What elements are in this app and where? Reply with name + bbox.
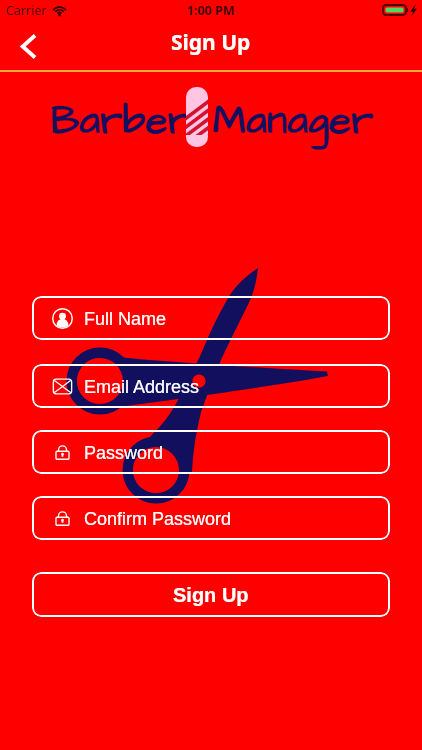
button[interactable]: Confirm Password (32, 496, 390, 540)
button[interactable]: Password (32, 430, 390, 474)
staticText: Carrier (6, 2, 47, 19)
staticText: Sign Up (173, 584, 249, 606)
staticText: Confirm Password (84, 509, 232, 529)
staticText: Email Address (84, 377, 200, 397)
staticText: Password (84, 443, 164, 463)
staticText: Sign Up (171, 28, 251, 57)
staticText: 1:00 PM (187, 2, 235, 19)
button[interactable]: Back (6, 22, 50, 66)
staticText: Manager (213, 94, 374, 150)
staticText: Barber (51, 94, 191, 150)
button[interactable]: Email Address (32, 364, 390, 408)
staticText: Full Name (84, 309, 167, 329)
button[interactable]: Full Name (32, 296, 390, 340)
button[interactable]: Sign Up (32, 572, 390, 617)
